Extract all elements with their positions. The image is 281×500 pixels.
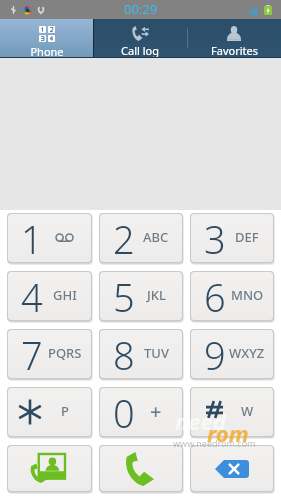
staticText: DEF	[235, 228, 259, 246]
staticText: 8	[113, 330, 135, 377]
staticText: 6	[204, 272, 226, 319]
other: Call	[99, 445, 183, 492]
staticText: 2	[113, 214, 135, 261]
staticText: ABC	[143, 228, 169, 246]
button[interactable]: Phone	[0, 19, 93, 58]
staticText: 5	[113, 272, 135, 319]
staticText: GHI	[53, 286, 77, 304]
button[interactable]: P	[8, 388, 91, 436]
staticText: Phone	[30, 44, 64, 58]
staticText: P	[61, 402, 69, 420]
other: Backspace	[190, 445, 274, 492]
button[interactable]: 2	[100, 214, 182, 262]
button[interactable]: 4	[8, 272, 91, 320]
staticText: +	[150, 398, 162, 425]
staticText: rom	[207, 418, 249, 448]
staticText: 4	[21, 272, 43, 319]
staticText: TUV	[144, 344, 169, 362]
button[interactable]: 8	[100, 330, 182, 378]
button[interactable]: 6	[191, 272, 273, 320]
staticText: PQRS	[48, 344, 82, 362]
button[interactable]: Call log	[93, 19, 187, 58]
button[interactable]: 9	[191, 330, 273, 378]
staticText: 9	[204, 330, 226, 377]
staticText: MNO	[231, 286, 264, 304]
staticText: 3	[204, 214, 226, 261]
button[interactable]: 0	[100, 388, 182, 436]
staticText: www.needrom.com	[173, 437, 256, 449]
staticText: JKL	[147, 286, 166, 304]
button[interactable]: W	[191, 388, 273, 436]
button[interactable]	[8, 446, 91, 491]
staticText: need	[175, 406, 226, 436]
button[interactable]: Favorites	[187, 19, 281, 58]
button[interactable]: 5	[100, 272, 182, 320]
other: Video call	[7, 445, 92, 492]
button[interactable]: 1	[8, 214, 91, 262]
button[interactable]	[100, 446, 182, 491]
staticText: WXYZ	[229, 344, 265, 362]
staticText: 00:29	[124, 0, 158, 18]
button[interactable]: 3	[191, 214, 273, 262]
staticText: Call log	[121, 43, 159, 58]
staticText: 7	[21, 330, 43, 377]
button[interactable]	[191, 446, 273, 491]
button[interactable]: 7	[8, 330, 91, 378]
staticText: W	[241, 402, 254, 420]
staticText: 1	[21, 214, 43, 261]
staticText: 0	[113, 388, 135, 435]
staticText: Favorites	[211, 43, 258, 58]
